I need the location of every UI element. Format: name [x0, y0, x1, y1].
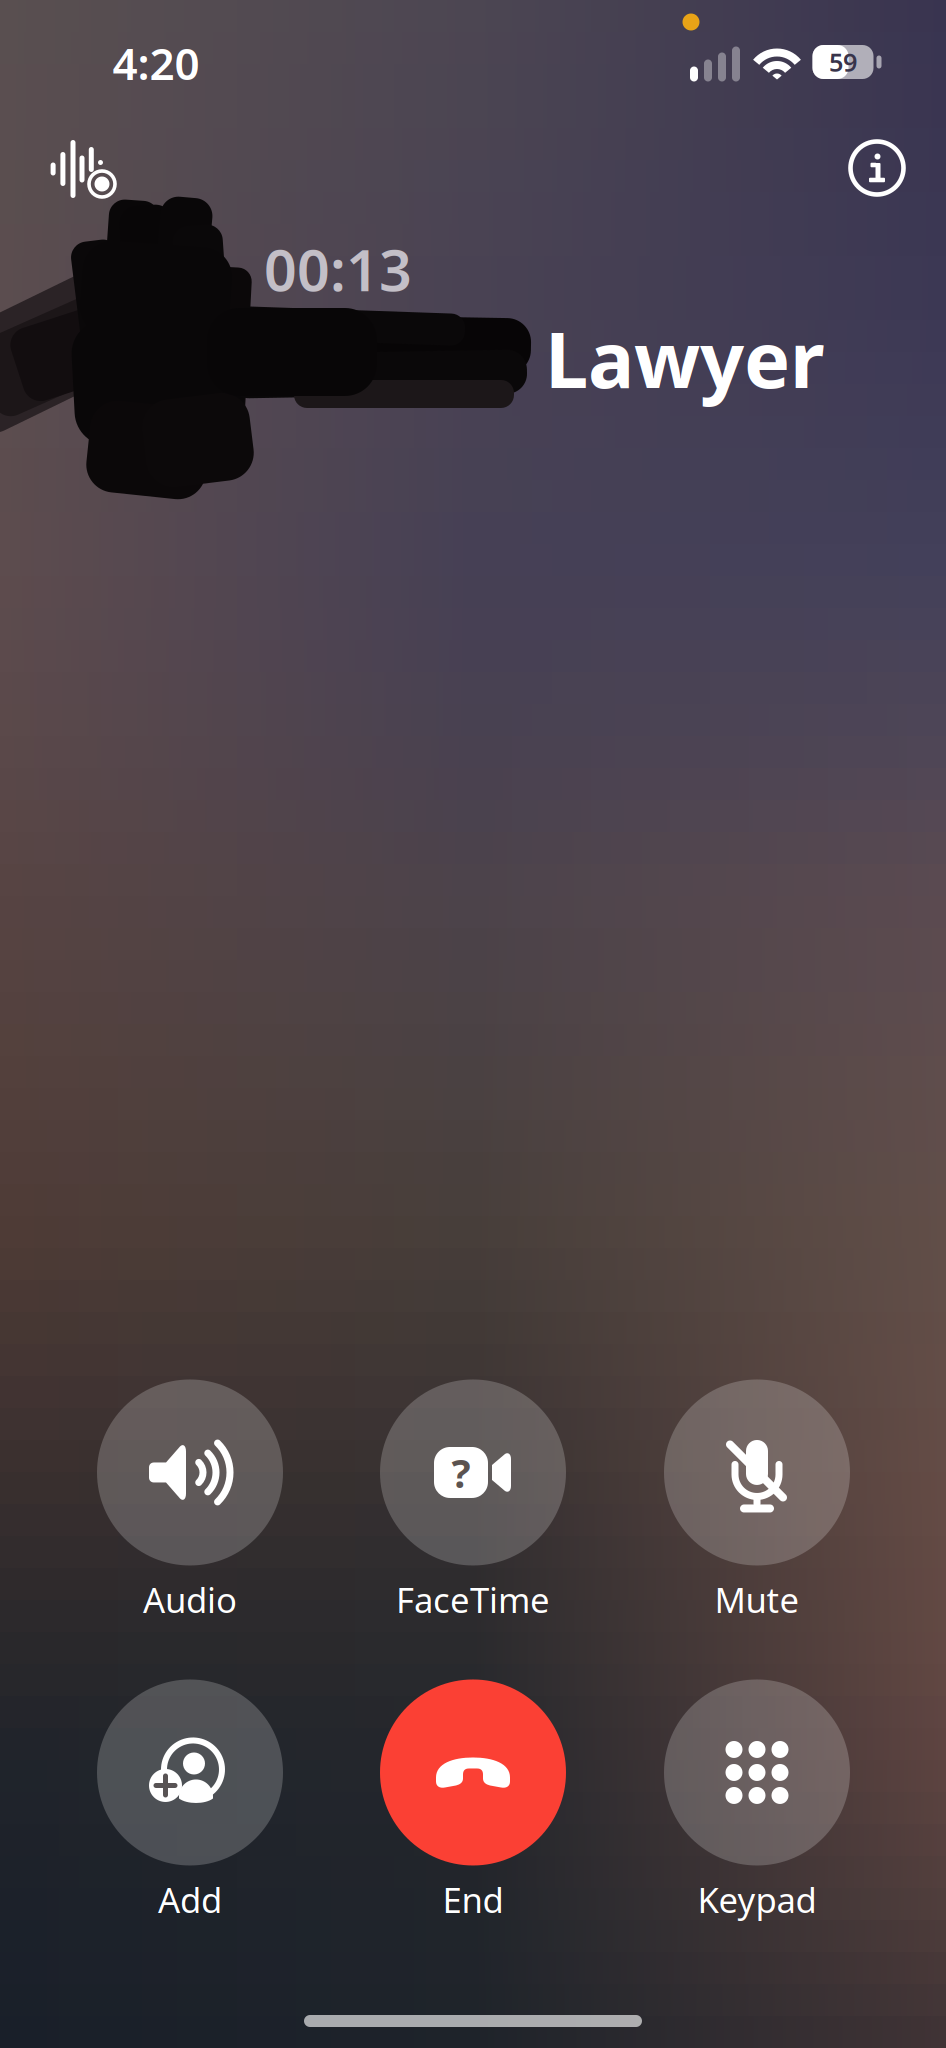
staticText: 59	[829, 45, 857, 79]
button[interactable]: Audio input mode	[47, 139, 117, 201]
button[interactable]: Audio	[70, 1371, 310, 1631]
staticText: ?	[451, 1446, 470, 1499]
staticText: 00:13	[264, 231, 412, 307]
staticText: Mute	[714, 1576, 799, 1622]
staticText: End	[442, 1876, 503, 1922]
staticText: Audio	[143, 1576, 237, 1622]
button[interactable]: End	[353, 1671, 593, 1931]
staticText: FaceTime	[396, 1576, 550, 1622]
staticText: Keypad	[697, 1876, 816, 1922]
button[interactable]: Add	[70, 1671, 310, 1931]
button[interactable]: Mute	[637, 1371, 877, 1631]
button[interactable]: Call details	[850, 141, 903, 194]
staticText: Lawyer	[545, 307, 825, 409]
staticText: 4:20	[112, 34, 199, 92]
button[interactable]: FaceTime	[353, 1371, 593, 1631]
button[interactable]: Keypad	[637, 1671, 877, 1931]
staticText: Add	[158, 1876, 222, 1922]
